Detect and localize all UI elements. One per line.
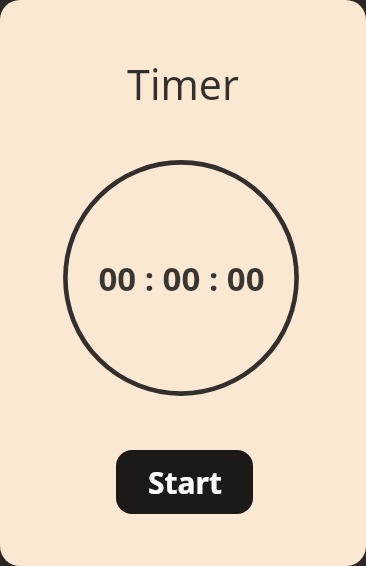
button[interactable]: Start [116,450,253,514]
staticText: 00 : 00 : 00 [98,256,265,301]
staticText: Start [148,462,222,503]
staticText: Timer [127,56,239,112]
